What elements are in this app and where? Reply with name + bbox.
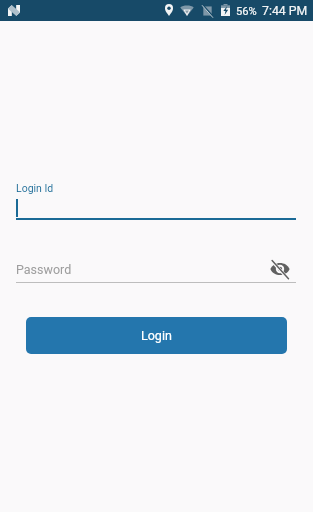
staticText: 56% xyxy=(236,5,257,18)
button[interactable]: Login xyxy=(26,317,287,354)
staticText: Login xyxy=(141,328,172,343)
button[interactable]: Show password xyxy=(265,254,294,283)
staticText: 7:44 PM xyxy=(262,4,308,18)
staticText: Password xyxy=(16,262,72,277)
staticText: Login Id xyxy=(16,182,54,194)
